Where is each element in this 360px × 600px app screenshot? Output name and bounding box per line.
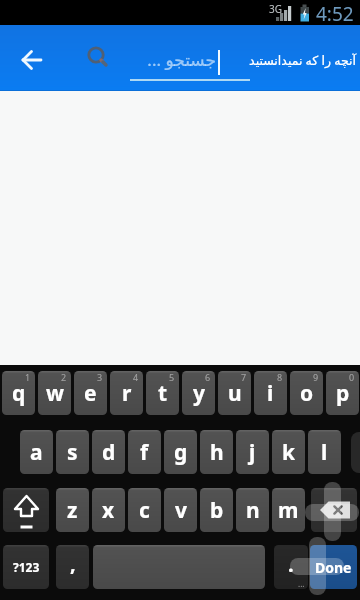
staticText: h <box>210 438 224 467</box>
staticText: ?123 <box>13 559 40 575</box>
staticText: a <box>30 438 43 467</box>
button[interactable]: j <box>236 430 269 474</box>
button[interactable]: g <box>164 430 197 474</box>
button[interactable]: b <box>200 488 233 532</box>
button[interactable]: , <box>56 545 89 589</box>
button[interactable]: z <box>56 488 89 532</box>
button[interactable]: r <box>110 371 143 415</box>
staticText: b <box>210 496 224 525</box>
button[interactable]: o <box>290 371 323 415</box>
button[interactable]: c <box>128 488 161 532</box>
staticText: c <box>139 496 150 525</box>
button[interactable] <box>93 545 265 589</box>
button[interactable] <box>12 49 56 85</box>
button[interactable]: m <box>272 488 305 532</box>
staticText: جستجو ... <box>147 48 216 71</box>
staticText: ... <box>298 578 305 589</box>
staticText: n <box>246 496 260 525</box>
staticText: f <box>140 438 149 467</box>
button[interactable] <box>3 488 49 532</box>
staticText: 4:52 <box>316 1 354 26</box>
button[interactable]: f <box>128 430 161 474</box>
button[interactable]: d <box>92 430 125 474</box>
button[interactable]: آنچه را که نمیدانستید <box>226 46 356 74</box>
button[interactable]: k <box>272 430 305 474</box>
button[interactable]: n <box>236 488 269 532</box>
staticText: . <box>288 551 294 578</box>
staticText: j <box>249 438 256 467</box>
button[interactable]: x <box>92 488 125 532</box>
staticText: w <box>46 379 64 408</box>
staticText: d <box>102 438 116 467</box>
button[interactable]: u <box>218 371 251 415</box>
staticText: y <box>193 379 205 408</box>
staticText: 7 <box>241 371 247 383</box>
button[interactable]: t <box>146 371 179 415</box>
button[interactable]: v <box>164 488 197 532</box>
staticText: q <box>12 379 26 408</box>
staticText: g <box>174 438 188 467</box>
staticText: v <box>175 496 187 525</box>
button[interactable]: Done <box>310 545 357 589</box>
button[interactable]: i <box>254 371 287 415</box>
staticText: 9 <box>313 371 319 383</box>
button[interactable]: y <box>182 371 215 415</box>
staticText: 8 <box>277 371 283 383</box>
button[interactable]: . <box>274 545 308 589</box>
staticText: l <box>321 438 328 467</box>
staticText: r <box>122 379 132 408</box>
staticText: t <box>158 379 168 408</box>
staticText: 4 <box>133 371 139 383</box>
staticText: 6 <box>205 371 211 383</box>
button[interactable]: a <box>20 430 53 474</box>
staticText: s <box>67 438 78 467</box>
button[interactable]: e <box>74 371 107 415</box>
button[interactable]: s <box>56 430 89 474</box>
staticText: 2 <box>61 371 67 383</box>
button[interactable]: h <box>200 430 233 474</box>
staticText: 3G <box>269 2 282 16</box>
button[interactable]: p <box>326 371 359 415</box>
staticText: p <box>336 379 350 408</box>
staticText: 0 <box>349 371 355 383</box>
staticText: u <box>228 379 242 408</box>
staticText: x <box>102 496 115 525</box>
staticText: Done <box>315 558 352 577</box>
staticText: 1 <box>25 371 31 383</box>
staticText: , <box>70 550 76 577</box>
button[interactable]: w <box>38 371 71 415</box>
staticText: k <box>282 438 296 467</box>
staticText: z <box>67 496 78 525</box>
staticText: m <box>278 496 299 525</box>
staticText: e <box>84 379 97 408</box>
staticText: o <box>300 379 314 408</box>
staticText: 5 <box>169 371 175 383</box>
button[interactable]: ?123 <box>3 545 49 589</box>
button[interactable]: l <box>308 430 341 474</box>
button[interactable] <box>311 488 357 532</box>
staticText: i <box>267 379 274 408</box>
staticText: 3 <box>97 371 103 383</box>
staticText: آنچه را که نمیدانستید <box>249 52 356 69</box>
button[interactable]: q <box>2 371 35 415</box>
